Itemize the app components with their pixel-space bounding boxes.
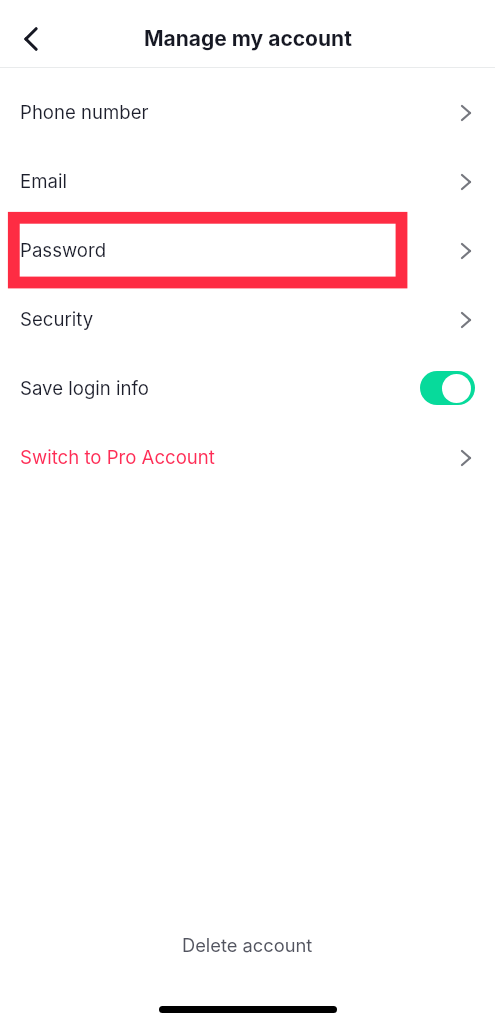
button[interactable]: Email — [0, 147, 495, 216]
button[interactable]: Save login info, on — [420, 371, 475, 405]
staticText: Phone number — [20, 101, 149, 124]
button[interactable]: Security — [0, 285, 495, 354]
button[interactable]: Password — [0, 216, 495, 285]
staticText: Manage my account — [144, 26, 352, 51]
button[interactable]: Save login info — [0, 354, 495, 423]
button[interactable]: Back — [9, 17, 53, 61]
staticText: Switch to Pro Account — [20, 446, 215, 469]
staticText: Save login info — [20, 377, 150, 400]
button[interactable]: Delete account — [164, 929, 331, 961]
button[interactable]: Phone number — [0, 78, 495, 147]
button[interactable]: Switch to Pro Account — [0, 423, 495, 492]
staticText: Password — [20, 239, 107, 262]
staticText: Security — [20, 308, 94, 331]
staticText: Email — [20, 170, 67, 193]
staticText: Delete account — [182, 934, 313, 956]
